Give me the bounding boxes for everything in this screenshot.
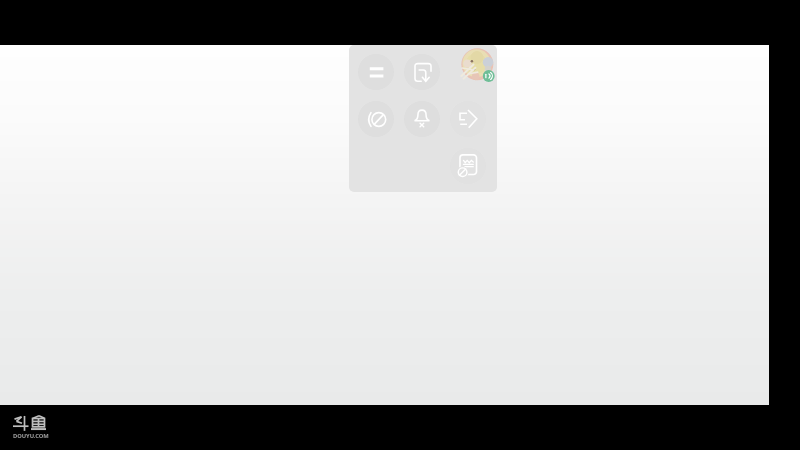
button[interactable]: Exit bbox=[445, 96, 491, 142]
button[interactable]: Profile bbox=[454, 45, 497, 88]
button[interactable]: Save to device bbox=[399, 49, 445, 95]
staticText: DOUYU.COM bbox=[13, 432, 49, 440]
button[interactable]: Turn off notifications bbox=[399, 96, 445, 142]
button[interactable]: Mute bbox=[353, 96, 399, 142]
button[interactable]: Block images bbox=[445, 143, 491, 189]
button[interactable]: Menu bbox=[353, 49, 399, 95]
